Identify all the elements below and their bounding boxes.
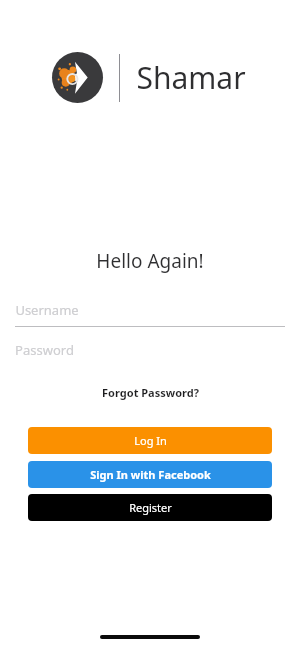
staticText: Hello Again! [96,248,204,274]
staticText: Password [15,341,74,359]
button[interactable]: Username [15,300,285,320]
button[interactable]: Forgot Password? [94,382,207,403]
staticText: Sign In with Facebook [90,467,211,482]
button[interactable]: Log In [28,427,272,454]
button[interactable]: Password [15,340,285,360]
staticText: Register [129,500,172,515]
staticText: Log In [134,433,167,448]
button[interactable]: Sign In with Facebook [28,461,272,488]
button[interactable]: Register [28,494,272,521]
staticText: Forgot Password? [102,385,199,400]
other: Shamar logo [52,52,103,103]
staticText: Username [15,301,79,319]
staticText: Shamar [136,57,246,98]
